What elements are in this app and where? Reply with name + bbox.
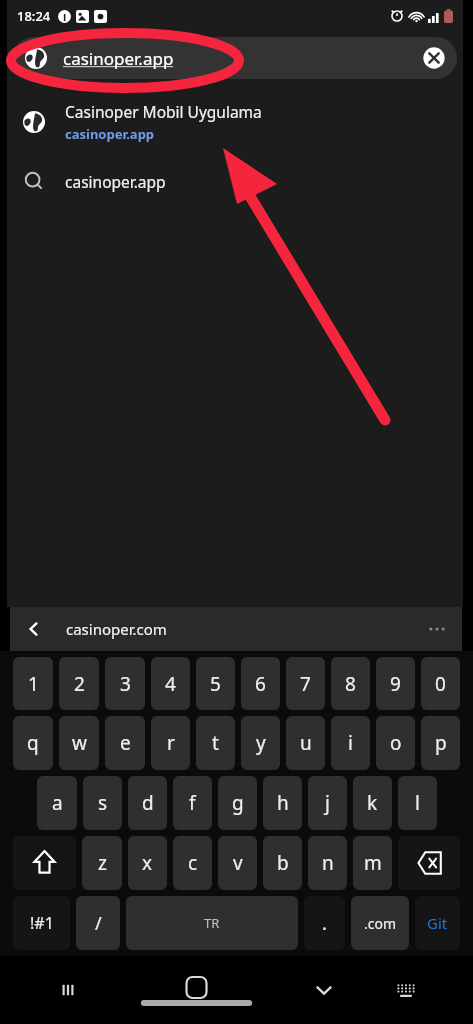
staticText: j [325,790,330,816]
staticText: n [322,850,334,876]
staticText: r [167,730,175,756]
button[interactable]: Clear [421,45,447,71]
staticText: q [27,730,39,756]
button[interactable]: 6 [241,657,280,710]
button[interactable]: f [173,776,212,830]
button[interactable]: v [218,836,257,890]
staticText: casinoper.com [66,619,167,639]
button[interactable]: Backspace [398,836,460,890]
staticText: s [98,790,108,816]
button[interactable]: k [353,776,392,830]
button[interactable]: r [151,716,190,770]
button[interactable]: Git [415,896,460,950]
staticText: i [348,730,353,756]
button[interactable]: q [13,716,53,770]
button[interactable]: 0 [421,657,460,710]
staticText: 3 [120,671,131,697]
staticText: 5 [210,671,221,697]
button[interactable]: 8 [331,657,370,710]
button[interactable]: j [308,776,347,830]
staticText: Casinoper Mobil Uygulama [65,101,262,122]
staticText: 4 [165,671,176,697]
button[interactable]: u [286,716,325,770]
button[interactable]: x [128,836,167,890]
staticText: 8 [345,671,356,697]
staticText: casinoper.app [65,171,166,192]
staticText: / [95,911,102,936]
button[interactable]: 1 [13,657,53,710]
staticText: x [142,850,153,876]
staticText: 7 [300,671,311,697]
button[interactable]: casinoper.app [7,152,463,210]
button[interactable]: / [76,896,120,950]
button[interactable]: Recents [45,967,91,1013]
button[interactable]: o [376,716,415,770]
button[interactable]: 3 [105,657,145,710]
staticText: m [364,850,382,876]
staticText: 1 [28,671,39,697]
staticText: e [120,730,131,756]
button[interactable]: TR [126,896,298,950]
staticText: TR [204,914,220,932]
staticText: 18:24 [17,7,51,25]
button[interactable]: e [105,716,145,770]
staticText: Git [427,913,448,933]
staticText: c [188,850,198,876]
staticText: f [189,790,196,816]
staticText: b [277,850,289,876]
button[interactable]: Casinoper Mobil Uygulama [7,92,463,152]
staticText: casinoper.app [65,125,155,143]
button[interactable]: z [82,836,122,890]
button[interactable]: w [59,716,99,770]
button[interactable]: More options [426,618,448,640]
staticText: .com [364,914,397,933]
button[interactable]: 2 [59,657,99,710]
button[interactable]: Shift [13,836,76,890]
staticText: w [72,730,87,756]
button[interactable]: b [263,836,302,890]
button[interactable]: . [304,896,345,950]
staticText: . [322,911,327,936]
button[interactable]: .com [351,896,409,950]
button[interactable]: 4 [151,657,190,710]
staticText: !#1 [30,912,54,934]
button[interactable]: h [263,776,302,830]
button[interactable]: m [353,836,392,890]
button[interactable]: d [128,776,167,830]
staticText: k [367,790,378,816]
button[interactable]: Home [136,967,257,1013]
button[interactable]: a [37,776,77,830]
button[interactable]: 7 [286,657,325,710]
staticText: p [435,730,447,756]
staticText: d [142,790,154,816]
button[interactable]: Hide keyboard [301,967,347,1013]
button[interactable]: y [241,716,280,770]
staticText: y [256,730,266,756]
button[interactable]: t [196,716,235,770]
button[interactable]: Previous [10,607,462,651]
button[interactable]: l [398,776,437,830]
button[interactable]: casinoper.app [13,37,457,79]
staticText: 0 [435,671,446,697]
button[interactable]: p [421,716,460,770]
button[interactable]: !#1 [13,896,70,950]
button[interactable]: i [331,716,370,770]
staticText: o [390,730,402,756]
button[interactable]: Change keyboard [383,967,429,1013]
button[interactable]: 9 [376,657,415,710]
staticText: v [233,850,243,876]
button[interactable]: g [218,776,257,830]
button[interactable]: Previous [24,619,44,639]
staticText: 9 [390,671,401,697]
staticText: h [277,790,289,816]
staticText: g [232,790,244,816]
staticText: u [300,730,312,756]
staticText: t [212,730,219,756]
staticText: 6 [255,671,266,697]
button[interactable]: n [308,836,347,890]
staticText: casinoper.app [63,47,174,70]
button[interactable]: s [83,776,122,830]
button[interactable]: c [173,836,212,890]
button[interactable]: 5 [196,657,235,710]
staticText: a [52,790,63,816]
